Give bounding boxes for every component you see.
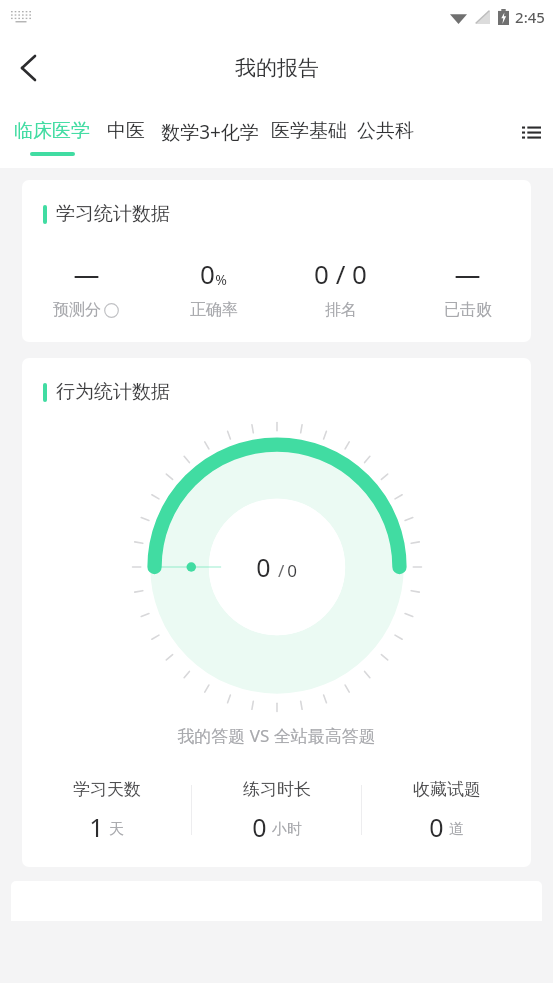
staticText: 天 — [109, 820, 124, 839]
staticText: 小时 — [272, 820, 302, 839]
button[interactable]: 0 / 0 — [277, 256, 404, 320]
staticText: 0 — [256, 550, 271, 584]
staticText: 已击败 — [444, 300, 492, 320]
staticText: 0 — [429, 810, 444, 841]
button[interactable]: 中医 — [107, 102, 145, 152]
staticText: 中医 — [107, 119, 145, 143]
staticText: 练习时长 — [243, 779, 311, 800]
staticText: 学习天数 — [73, 779, 141, 800]
button[interactable]: — — [22, 256, 150, 320]
staticText: 公共科 — [357, 119, 414, 143]
staticText: 0 / 0 — [314, 256, 367, 291]
button[interactable]: Back — [0, 40, 56, 96]
staticText: — — [73, 256, 100, 291]
button[interactable]: 公共科 — [357, 102, 414, 152]
staticText: 医学基础 — [271, 119, 347, 143]
staticText: 0 — [252, 810, 267, 841]
button[interactable]: 临床医学 — [14, 102, 90, 156]
staticText: 收藏试题 — [413, 779, 481, 800]
staticText: 学习统计数据 — [56, 202, 170, 226]
staticText: 数学3+化学 — [161, 119, 259, 145]
button[interactable]: 收藏试题 — [362, 779, 531, 841]
staticText: 我的答题 VS 全站最高答题 — [177, 724, 376, 747]
staticText: 0 — [200, 256, 215, 291]
staticText: % — [215, 270, 227, 289]
button[interactable]: 练习时长 — [192, 779, 361, 841]
staticText: / — [271, 559, 287, 582]
button[interactable]: 0 — [150, 256, 277, 320]
button[interactable]: — — [404, 256, 531, 320]
staticText: 2:45 — [515, 7, 545, 27]
staticText: 正确率 — [190, 300, 238, 320]
staticText: 预测分 — [53, 300, 101, 320]
staticText: — — [454, 256, 481, 291]
staticText: 临床医学 — [14, 119, 90, 143]
staticText: 我的报告 — [235, 55, 319, 81]
button[interactable]: 数学3+化学 — [161, 102, 259, 154]
staticText: 1 — [89, 810, 104, 841]
button[interactable]: Tab list — [509, 110, 553, 154]
button[interactable]: 学习天数 — [22, 779, 191, 841]
button[interactable]: 医学基础 — [271, 102, 347, 152]
staticText: 排名 — [325, 300, 357, 320]
staticText: 0 — [287, 559, 297, 582]
staticText: 行为统计数据 — [56, 380, 170, 404]
staticText: 道 — [449, 820, 464, 839]
